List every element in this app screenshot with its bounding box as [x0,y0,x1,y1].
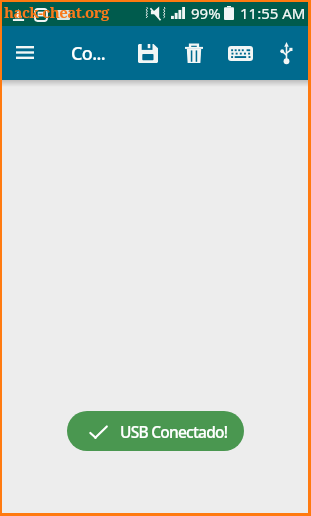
button[interactable]: USB Conectado! [67,411,244,451]
button[interactable]: Save [126,26,170,80]
button[interactable]: USB connection [264,26,308,80]
staticText: 99% [191,3,221,23]
staticText: hack-cheat.org [4,2,109,22]
staticText: Co... [71,41,106,66]
staticText: 11:55 AM [240,3,306,23]
button[interactable]: Delete [172,26,216,80]
button[interactable]: Menu [6,26,44,80]
button[interactable]: Keyboard [218,26,262,80]
staticText: USB Conectado! [120,421,228,442]
